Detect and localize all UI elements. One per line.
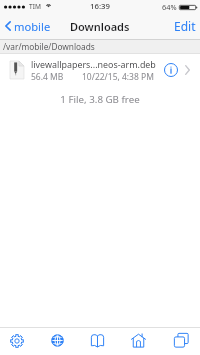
staticText: mobile — [14, 19, 51, 34]
staticText: 56.4 MB — [31, 71, 64, 83]
staticText: Downloads — [70, 19, 130, 34]
button[interactable]: mobile — [0, 13, 57, 39]
staticText: Edit — [174, 18, 196, 34]
button[interactable]: Settings — [0, 328, 34, 355]
button[interactable]: livewallpapers...neos-arm.deb — [0, 54, 200, 86]
staticText: 16:39 — [90, 1, 110, 12]
button[interactable]: More Info — [164, 63, 178, 77]
staticText: TIM — [29, 2, 41, 11]
staticText: 10/22/15, 4:38 PM — [82, 71, 154, 83]
button[interactable]: Tabs — [164, 328, 198, 355]
staticText: 1 File, 3.8 GB free — [0, 93, 200, 106]
button[interactable]: Bookmarks — [80, 328, 114, 355]
staticText: /var/mobile/Downloads — [3, 41, 95, 52]
staticText: livewallpapers...neos-arm.deb — [31, 58, 156, 70]
button[interactable]: Browser — [40, 328, 74, 355]
button[interactable]: Home — [121, 328, 155, 355]
button[interactable]: Edit — [166, 13, 200, 39]
staticText: 64% — [162, 2, 177, 12]
